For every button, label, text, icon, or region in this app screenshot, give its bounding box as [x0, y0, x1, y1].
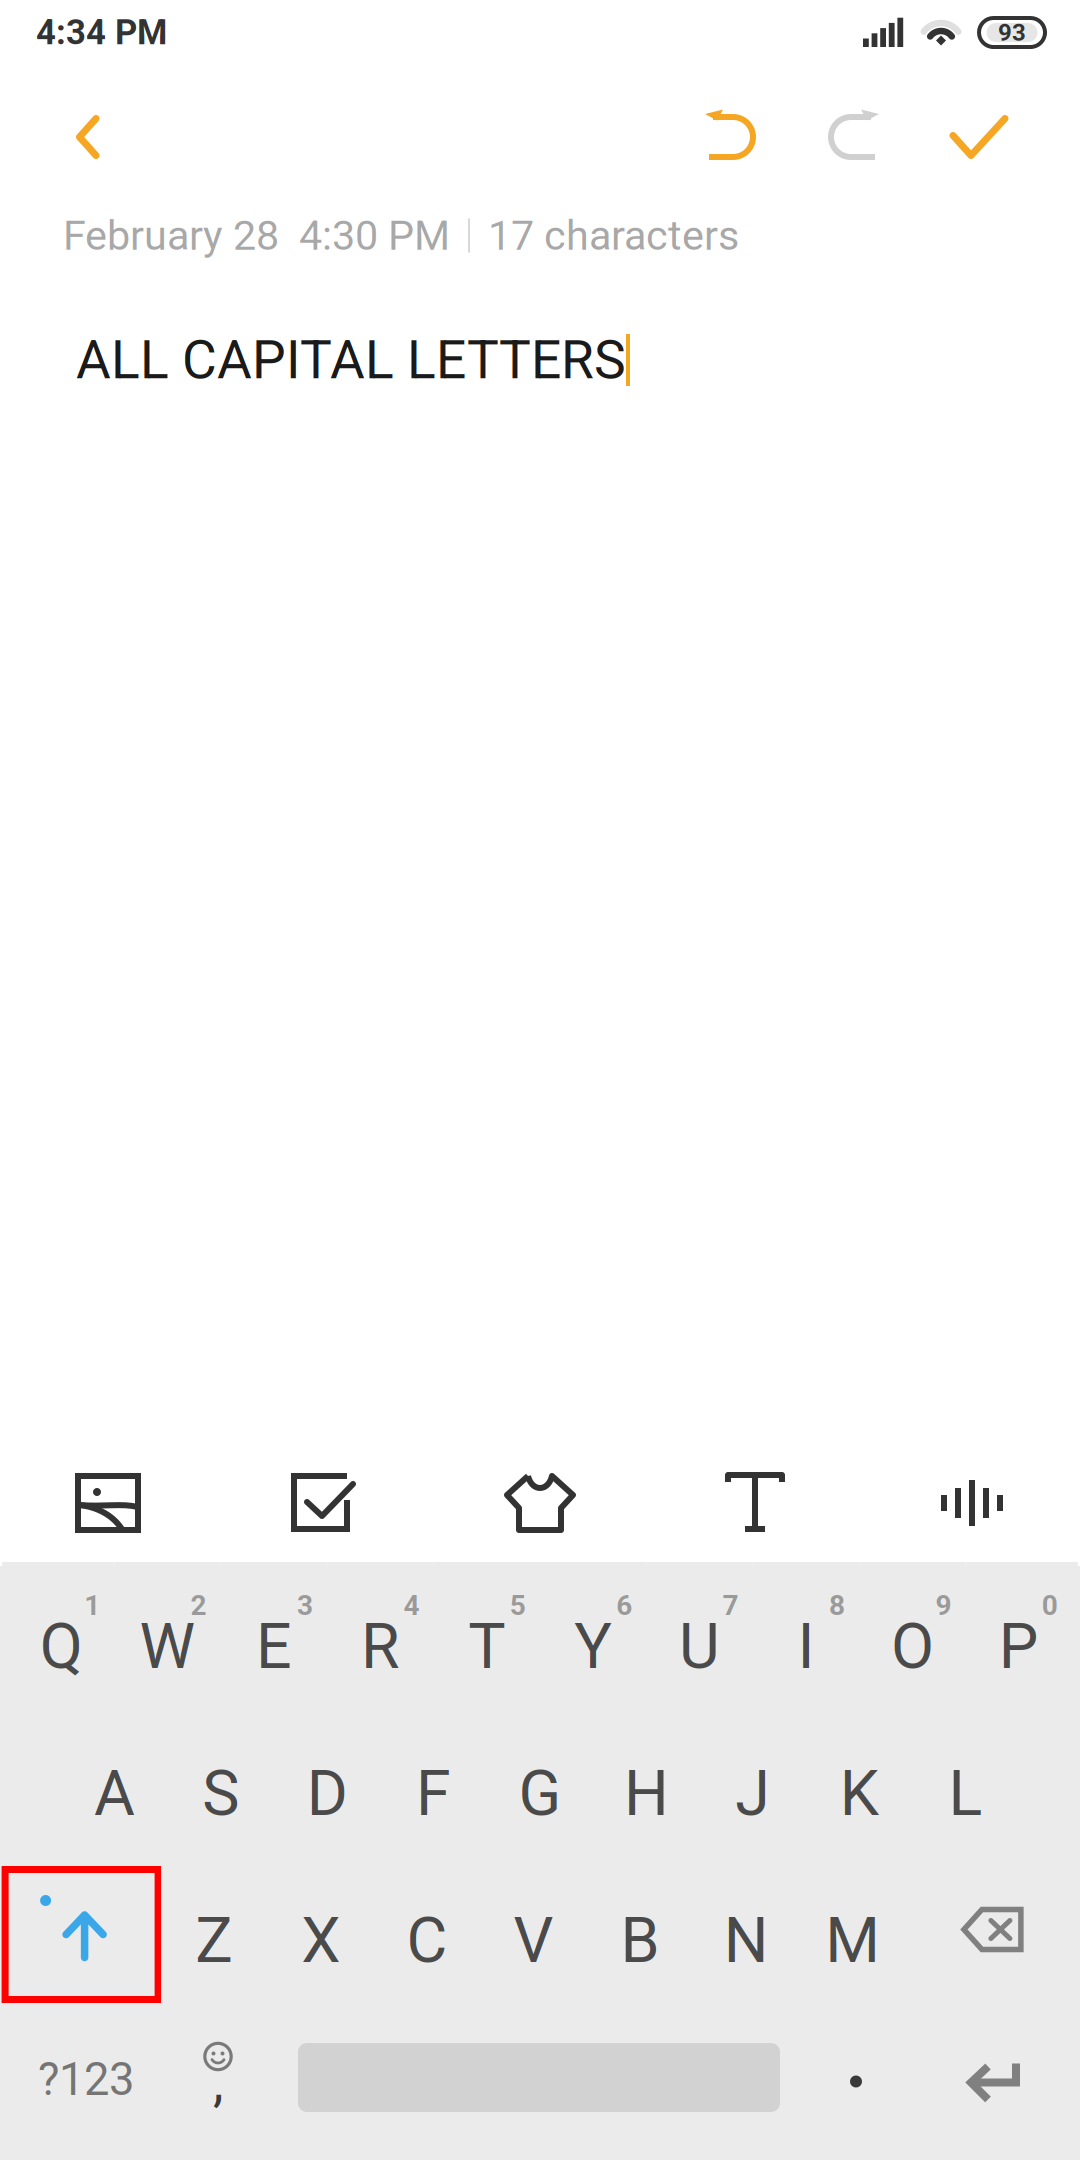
button[interactable]: S: [168, 1709, 274, 1856]
button[interactable]: N: [693, 1856, 799, 2003]
staticText: W: [140, 1610, 196, 1683]
staticText: 9: [935, 1589, 951, 1622]
button[interactable]: Return: [900, 2003, 1080, 2160]
button[interactable]: V: [480, 1856, 587, 2003]
staticText: 4: [403, 1589, 419, 1622]
button[interactable]: Style: [432, 1440, 648, 1566]
staticText: H: [624, 1757, 669, 1830]
staticText: 0: [1042, 1589, 1058, 1622]
button[interactable]: J: [700, 1709, 806, 1856]
button[interactable]: E: [221, 1562, 327, 1709]
staticText: 5: [510, 1589, 526, 1622]
staticText: S: [202, 1757, 239, 1830]
button[interactable]: L: [912, 1709, 1019, 1856]
staticText: A: [94, 1757, 135, 1830]
button[interactable]: Shift: [0, 1856, 161, 2003]
button[interactable]: H: [593, 1709, 700, 1856]
staticText: T: [468, 1610, 505, 1683]
button[interactable]: Voice: [864, 1440, 1080, 1566]
button[interactable]: O: [859, 1562, 966, 1709]
button[interactable]: Z: [161, 1856, 267, 2003]
button[interactable]: M: [799, 1856, 906, 2003]
staticText: 6: [616, 1589, 632, 1622]
button[interactable]: Checklist: [216, 1440, 432, 1566]
staticText: 4:34 PM: [36, 12, 167, 53]
button[interactable]: Insert image: [0, 1440, 216, 1566]
button[interactable]: A: [61, 1709, 168, 1856]
button[interactable]: T: [434, 1562, 540, 1709]
staticText: 1: [84, 1589, 100, 1622]
button[interactable]: C: [374, 1856, 480, 2003]
button[interactable]: Q: [8, 1562, 114, 1709]
staticText: L: [949, 1757, 983, 1830]
button[interactable]: ?123: [0, 2003, 172, 2160]
staticText: Y: [574, 1610, 612, 1683]
staticText: C: [407, 1904, 448, 1977]
button[interactable]: P: [966, 1562, 1072, 1709]
staticText: R: [361, 1610, 400, 1683]
staticText: D: [307, 1757, 348, 1830]
button[interactable]: Back: [0, 65, 176, 209]
staticText: February 28 4:30 PM: [63, 211, 450, 260]
staticText: B: [620, 1904, 659, 1977]
button[interactable]: Y: [540, 1562, 646, 1709]
staticText: 7: [723, 1589, 739, 1622]
staticText: X: [301, 1904, 340, 1977]
button[interactable]: Space: [264, 2003, 814, 2160]
staticText: 3: [297, 1589, 313, 1622]
staticText: P: [999, 1610, 1039, 1683]
button[interactable]: Undo: [660, 65, 782, 209]
staticText: K: [840, 1757, 879, 1830]
staticText: E: [256, 1610, 292, 1683]
staticText: M: [825, 1904, 880, 1977]
staticText: 17 characters: [488, 211, 739, 260]
button[interactable]: K: [806, 1709, 912, 1856]
button[interactable]: B: [587, 1856, 693, 2003]
staticText: 93: [998, 18, 1026, 46]
button[interactable]: Backspace: [906, 1856, 1080, 2003]
staticText: I: [797, 1610, 814, 1683]
button[interactable]: Redo: [782, 65, 904, 209]
staticText: ,: [213, 2051, 223, 2114]
button[interactable]: Text format: [648, 1440, 864, 1566]
staticText: N: [724, 1904, 769, 1977]
staticText: ?123: [38, 2053, 134, 2106]
staticText: Q: [40, 1610, 83, 1683]
staticText: Z: [195, 1904, 233, 1977]
button[interactable]: U: [646, 1562, 753, 1709]
staticText: 8: [829, 1589, 845, 1622]
button[interactable]: Period: [814, 2003, 900, 2160]
staticText: V: [513, 1904, 553, 1977]
button[interactable]: X: [267, 1856, 374, 2003]
staticText: ALL CAPITAL LETTERS: [76, 329, 626, 391]
staticText: 2: [191, 1589, 207, 1622]
staticText: F: [416, 1757, 451, 1830]
button[interactable]: W: [114, 1562, 221, 1709]
button[interactable]: R: [327, 1562, 434, 1709]
button[interactable]: Emoji and comma: [172, 2003, 264, 2160]
staticText: U: [679, 1610, 720, 1683]
staticText: O: [891, 1610, 934, 1683]
button[interactable]: G: [487, 1709, 593, 1856]
button[interactable]: Done: [904, 65, 1080, 209]
button[interactable]: F: [380, 1709, 487, 1856]
staticText: G: [518, 1757, 561, 1830]
button[interactable]: I: [753, 1562, 859, 1709]
staticText: J: [735, 1757, 770, 1830]
button[interactable]: D: [274, 1709, 380, 1856]
